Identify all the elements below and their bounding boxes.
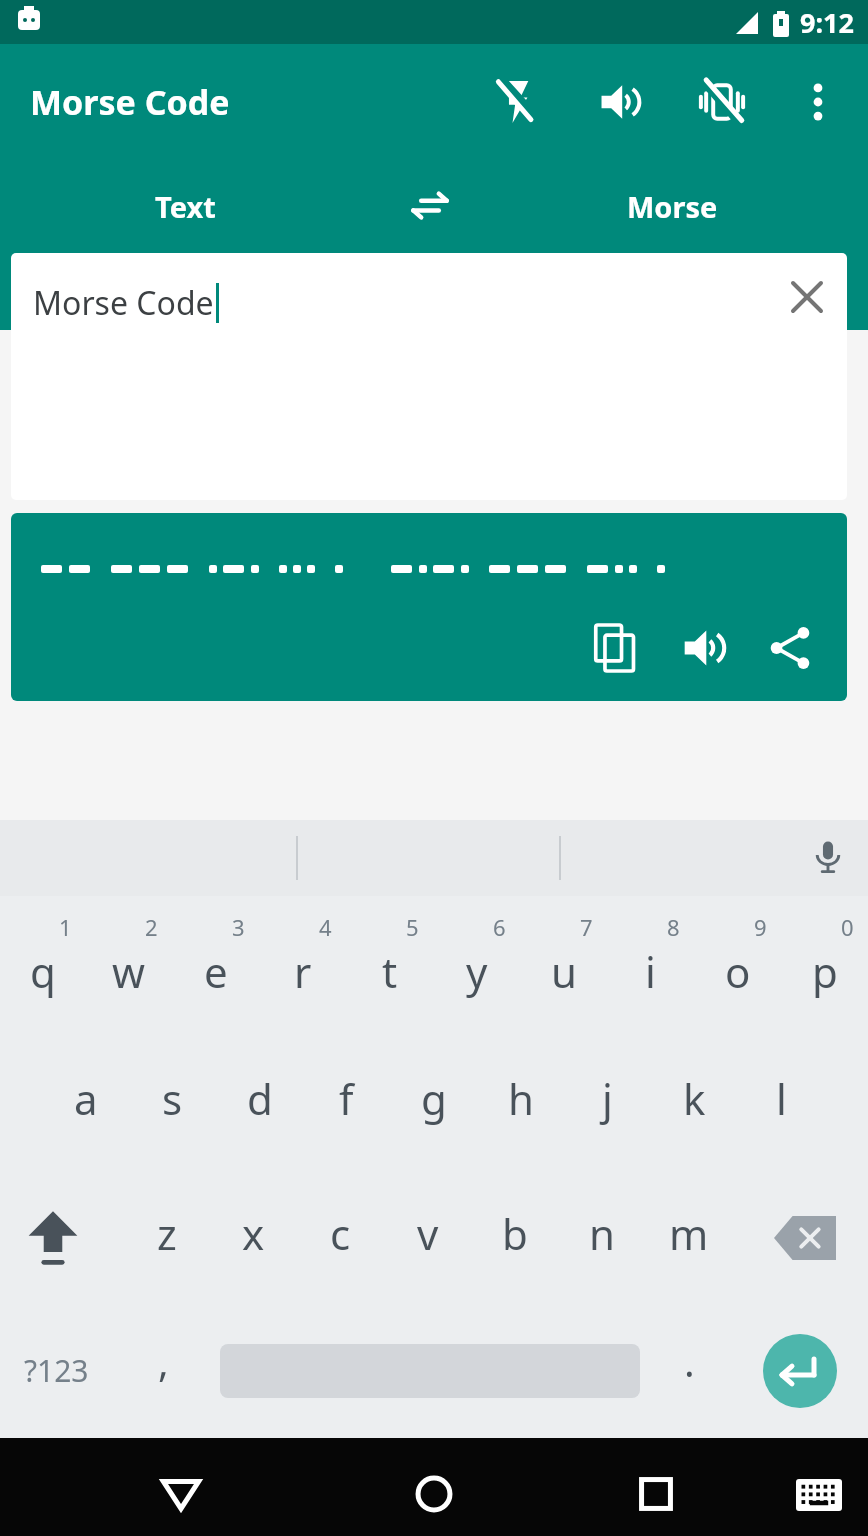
button[interactable]: 8 [607, 896, 694, 1031]
staticText: q [30, 943, 56, 1000]
button[interactable] [413, 1473, 455, 1515]
button[interactable] [787, 277, 827, 317]
staticText: o [725, 943, 751, 1000]
staticText: 3 [232, 912, 245, 942]
button[interactable]: , [158, 1334, 169, 1388]
staticText: k [683, 1070, 706, 1127]
button[interactable]: ?123 [24, 1350, 89, 1391]
staticText: 2 [145, 912, 158, 942]
button[interactable] [763, 1334, 837, 1408]
staticText: g [421, 1070, 447, 1127]
staticText: r [294, 943, 312, 1000]
button[interactable] [681, 625, 727, 671]
staticText: 7 [580, 912, 593, 942]
button[interactable] [408, 184, 452, 228]
staticText: v [417, 1205, 439, 1262]
staticText: z [157, 1205, 177, 1262]
button[interactable]: j [564, 1031, 651, 1166]
button[interactable]: g [390, 1031, 477, 1166]
button[interactable] [810, 840, 846, 876]
staticText: b [502, 1205, 528, 1262]
button[interactable]: Text [155, 187, 216, 226]
button[interactable]: a [43, 1031, 129, 1166]
button[interactable] [700, 80, 744, 124]
staticText: Morse Code [30, 79, 230, 125]
staticText: f [339, 1070, 354, 1127]
staticText: m [669, 1205, 709, 1262]
button[interactable]: n [558, 1166, 645, 1301]
button[interactable] [732, 1166, 868, 1301]
staticText: l [776, 1070, 787, 1127]
button[interactable]: x [210, 1166, 297, 1301]
button[interactable] [769, 627, 811, 669]
staticText: 9 [754, 912, 767, 942]
button[interactable]: m [645, 1166, 732, 1301]
button[interactable]: Morse [627, 187, 718, 226]
button[interactable]: 0 [781, 896, 868, 1031]
button[interactable]: 1 [0, 896, 86, 1031]
button[interactable] [494, 80, 538, 124]
button[interactable]: 4 [259, 896, 346, 1031]
button[interactable]: d [216, 1031, 303, 1166]
staticText: p [812, 943, 838, 1000]
staticText: 6 [493, 912, 506, 942]
button[interactable] [0, 1166, 123, 1301]
button[interactable]: 6 [433, 896, 520, 1031]
button[interactable]: k [651, 1031, 738, 1166]
button[interactable] [593, 625, 639, 671]
staticText: c [330, 1205, 351, 1262]
button[interactable]: . [684, 1334, 695, 1388]
button[interactable]: z [123, 1166, 210, 1301]
staticText: n [589, 1205, 615, 1262]
staticText: h [508, 1070, 534, 1127]
staticText: t [382, 943, 398, 1000]
button[interactable]: 5 [346, 896, 433, 1031]
staticText: a [74, 1070, 98, 1127]
button[interactable] [598, 80, 642, 124]
button[interactable]: f [303, 1031, 390, 1166]
button[interactable] [160, 1473, 202, 1515]
staticText: 4 [319, 912, 332, 942]
staticText: i [645, 943, 656, 1000]
staticText: y [466, 943, 488, 1000]
button[interactable]: h [477, 1031, 564, 1166]
staticText: u [551, 943, 577, 1000]
button[interactable]: c [297, 1166, 384, 1301]
staticText: 0 [841, 912, 854, 942]
staticText: j [602, 1070, 613, 1127]
staticText: 9:12 [800, 4, 854, 41]
button[interactable]: b [471, 1166, 558, 1301]
button[interactable]: l [738, 1031, 825, 1166]
button[interactable]: 9 [694, 896, 781, 1031]
staticText: 5 [406, 912, 419, 942]
button[interactable]: s [129, 1031, 216, 1166]
button[interactable] [796, 80, 840, 124]
button[interactable]: v [384, 1166, 471, 1301]
staticText: w [112, 943, 146, 1000]
button[interactable] [637, 1475, 675, 1513]
staticText: s [162, 1070, 183, 1127]
staticText: Morse Code [33, 281, 214, 325]
staticText: e [204, 943, 228, 1000]
button[interactable] [796, 1479, 842, 1511]
staticText: d [247, 1070, 273, 1127]
staticText: 8 [667, 912, 680, 942]
staticText: 1 [59, 912, 72, 942]
button[interactable]: 3 [172, 896, 259, 1031]
button[interactable]: 7 [520, 896, 607, 1031]
button[interactable]: 2 [86, 896, 172, 1031]
staticText: x [242, 1205, 265, 1262]
